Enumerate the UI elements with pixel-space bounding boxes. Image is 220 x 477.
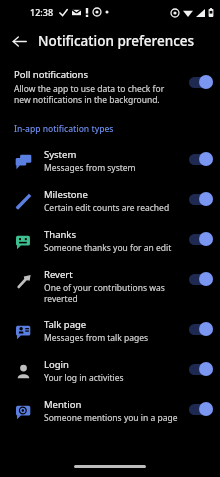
- button[interactable]: Toggle: [188, 151, 220, 167]
- button[interactable]: Back: [0, 24, 38, 58]
- staticText: In-app notification types: [14, 123, 114, 135]
- button[interactable]: System: [0, 141, 220, 181]
- button[interactable]: Toggle: [188, 271, 220, 287]
- staticText: Messages from talk pages: [44, 332, 149, 344]
- staticText: Mention: [44, 398, 82, 411]
- button[interactable]: Login: [0, 351, 220, 391]
- staticText: Notification preferences: [38, 32, 195, 50]
- staticText: Messages from system: [44, 162, 136, 174]
- button[interactable]: Milestone: [0, 181, 220, 221]
- button[interactable]: Toggle: [188, 191, 220, 207]
- staticText: Someone thanks you for an edit: [44, 242, 172, 254]
- staticText: Certain edit counts are reached: [44, 202, 170, 214]
- button[interactable]: Thanks: [0, 221, 220, 261]
- staticText: Poll notifications: [14, 68, 89, 81]
- button[interactable]: Toggle: [188, 74, 220, 90]
- staticText: System: [44, 148, 77, 161]
- button[interactable]: Talk page: [0, 311, 220, 351]
- button[interactable]: Poll notifications: [0, 58, 220, 111]
- button[interactable]: Mention: [0, 391, 220, 431]
- staticText: Talk page: [44, 318, 87, 331]
- staticText: 12:38: [30, 6, 54, 18]
- staticText: Thanks: [44, 228, 76, 241]
- staticText: Someone mentions you in a page: [44, 412, 178, 424]
- button[interactable]: Toggle: [188, 231, 220, 247]
- staticText: Your log in activities: [44, 372, 124, 384]
- staticText: Revert: [44, 268, 73, 281]
- button[interactable]: Toggle: [188, 321, 220, 337]
- button[interactable]: Toggle: [188, 401, 220, 417]
- button[interactable]: Revert: [0, 261, 220, 311]
- staticText: Login: [44, 358, 69, 371]
- staticText: Milestone: [44, 188, 88, 201]
- staticText: One of your contributions was reverted: [44, 282, 182, 304]
- staticText: Allow the app to use data to check for n…: [14, 83, 182, 105]
- button[interactable]: Toggle: [188, 361, 220, 377]
